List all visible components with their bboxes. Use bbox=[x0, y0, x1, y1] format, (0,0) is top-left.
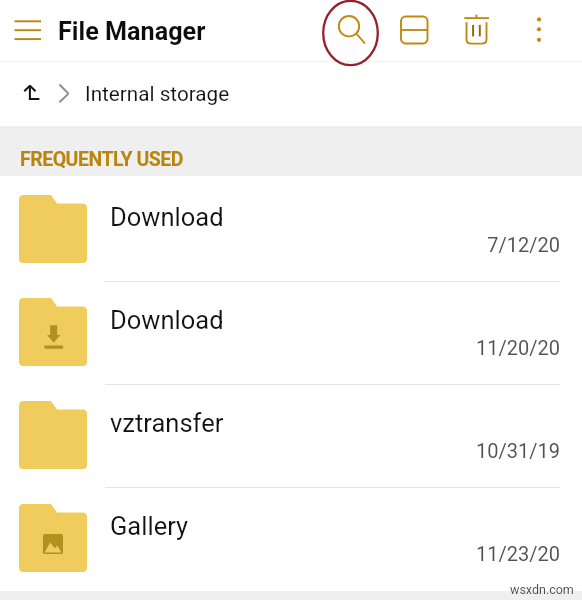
staticText: 7/12/20 bbox=[358, 233, 560, 256]
staticText: Download bbox=[110, 202, 224, 232]
button[interactable]: Download bbox=[0, 176, 582, 279]
staticText: Gallery bbox=[110, 511, 189, 541]
button[interactable]: Search bbox=[330, 11, 370, 51]
staticText: Internal storage bbox=[85, 82, 230, 106]
staticText: wsxdn.com bbox=[510, 582, 574, 597]
button[interactable]: Gallery bbox=[0, 485, 582, 588]
button[interactable]: Delete bbox=[459, 11, 495, 47]
staticText: vztransfer bbox=[110, 408, 224, 438]
staticText: 11/20/20 bbox=[358, 336, 560, 359]
button[interactable]: vztransfer bbox=[0, 382, 582, 485]
button[interactable]: Download bbox=[0, 279, 582, 382]
button[interactable]: Navigation menu bbox=[8, 10, 48, 52]
button[interactable]: Change view bbox=[396, 11, 432, 47]
staticText: Download bbox=[110, 305, 224, 335]
staticText: FREQUENTLY USED bbox=[20, 148, 183, 171]
button[interactable]: More options bbox=[527, 11, 551, 49]
staticText: File Manager bbox=[58, 17, 206, 47]
staticText: 11/23/20 bbox=[358, 542, 560, 565]
button[interactable]: Internal storage bbox=[0, 63, 582, 125]
staticText: 10/31/19 bbox=[358, 439, 560, 462]
